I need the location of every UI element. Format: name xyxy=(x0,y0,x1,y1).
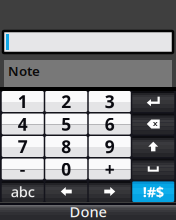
staticText: 9 xyxy=(105,135,115,158)
button[interactable]: 8 xyxy=(45,136,87,157)
button[interactable]: 3 xyxy=(89,91,131,112)
staticText: abc xyxy=(11,182,35,201)
staticText: !#$ xyxy=(143,182,164,201)
button[interactable]: Move right xyxy=(89,181,131,202)
staticText: 3 xyxy=(105,90,115,113)
staticText: Note xyxy=(8,62,40,80)
staticText: 7 xyxy=(18,135,28,158)
button[interactable]: 9 xyxy=(89,136,131,157)
staticText: 8 xyxy=(61,135,71,158)
staticText: + xyxy=(105,157,115,180)
button[interactable]: 4 xyxy=(2,113,44,134)
staticText: 4 xyxy=(18,112,28,135)
button[interactable]: Move left xyxy=(45,181,87,202)
staticText: 6 xyxy=(105,112,115,135)
button[interactable]: - xyxy=(2,158,44,179)
button[interactable]: Delete xyxy=(132,113,174,134)
button[interactable]: Letters xyxy=(2,181,44,202)
button[interactable]: 6 xyxy=(89,113,131,134)
staticText: - xyxy=(20,157,26,180)
button[interactable]: 1 xyxy=(2,91,44,112)
button[interactable]: Done xyxy=(0,203,176,220)
button[interactable]: + xyxy=(89,158,131,179)
button[interactable]: Space xyxy=(132,158,174,179)
button[interactable]: 2 xyxy=(45,91,87,112)
button[interactable]: 5 xyxy=(45,113,87,134)
staticText: 2 xyxy=(61,90,71,113)
staticText: 5 xyxy=(61,112,71,135)
staticText: 0 xyxy=(61,157,71,180)
button[interactable]: Shift xyxy=(132,136,174,157)
button[interactable]: Return xyxy=(132,91,174,112)
button[interactable]: 0 xyxy=(45,158,87,179)
button[interactable]: 7 xyxy=(2,136,44,157)
staticText: 1 xyxy=(18,90,28,113)
staticText: Done xyxy=(69,202,106,220)
button[interactable]: Symbols xyxy=(132,181,174,202)
